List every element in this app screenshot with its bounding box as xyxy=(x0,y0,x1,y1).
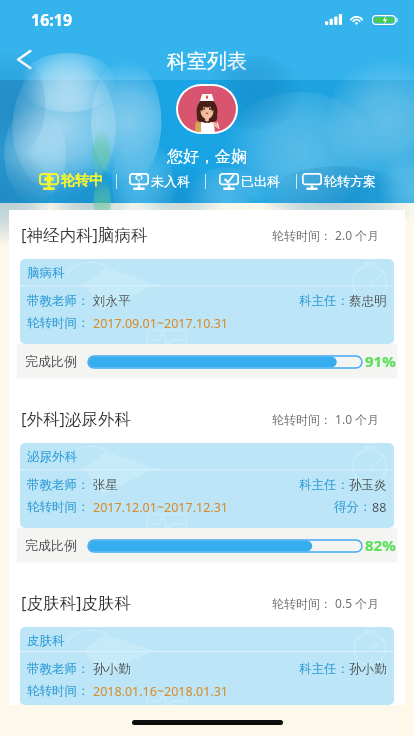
button[interactable]: 未入科 xyxy=(129,166,190,196)
staticText: 完成比例 xyxy=(25,537,77,553)
staticText: 轮转时间： xyxy=(27,499,90,515)
staticText: 已出科 xyxy=(241,173,280,189)
staticText: 2017.12.01~2017.12.31 xyxy=(93,499,228,516)
staticText: 蔡忠明 xyxy=(349,293,387,309)
staticText: 2017.09.01~2017.10.31 xyxy=(93,315,228,332)
staticText: 孙小勤 xyxy=(93,661,131,677)
staticText: 16:19 xyxy=(31,9,73,31)
staticText: 科室列表 xyxy=(167,49,247,74)
staticText: 轮转时间： 0.5 个月 xyxy=(272,595,380,611)
staticText: 2018.01.16~2018.01.31 xyxy=(93,683,228,700)
staticText: 得分： xyxy=(334,499,372,515)
staticText: 刘永平 xyxy=(93,293,131,309)
button[interactable]: [神经内科]脑病科 xyxy=(9,210,405,259)
staticText: 轮转时间： xyxy=(27,315,90,331)
staticText: 带教老师： xyxy=(27,293,90,309)
staticText: 脑病科 xyxy=(27,265,65,281)
staticText: 轮转中 xyxy=(61,172,103,190)
staticText: 皮肤科 xyxy=(27,633,65,649)
button[interactable]: Back xyxy=(0,36,48,80)
staticText: 91% xyxy=(365,351,396,371)
staticText: 孙玉炎 xyxy=(349,477,387,493)
staticText: 科主任： xyxy=(299,477,349,493)
staticText: [皮肤科]皮肤科 xyxy=(21,591,131,614)
staticText: 带教老师： xyxy=(27,477,90,493)
staticText: 轮转时间： xyxy=(27,683,90,699)
staticText: 泌尿外科 xyxy=(27,449,77,465)
button[interactable]: [外科]泌尿外科 xyxy=(9,394,405,443)
staticText: 轮转方案 xyxy=(324,173,376,189)
staticText: 82% xyxy=(365,535,396,555)
staticText: 完成比例 xyxy=(25,353,77,369)
button[interactable]: 已出科 xyxy=(219,166,280,196)
staticText: [外科]泌尿外科 xyxy=(21,407,131,430)
staticText: [神经内科]脑病科 xyxy=(21,223,148,246)
staticText: 您好，金娴 xyxy=(167,147,247,167)
button[interactable]: 轮转中 xyxy=(39,166,103,196)
button[interactable]: [皮肤科]皮肤科 xyxy=(9,578,405,627)
staticText: 孙小勤 xyxy=(349,661,387,677)
staticText: 轮转时间： 1.0 个月 xyxy=(272,411,380,427)
staticText: 轮转时间： 2.0 个月 xyxy=(272,227,380,243)
staticText: 科主任： xyxy=(299,293,349,309)
staticText: 张星 xyxy=(93,477,118,493)
staticText: 未入科 xyxy=(151,173,190,189)
staticText: 科主任： xyxy=(299,661,349,677)
staticText: 带教老师： xyxy=(27,661,90,677)
staticText: 88 xyxy=(372,499,387,516)
button[interactable]: 轮转方案 xyxy=(302,166,376,196)
